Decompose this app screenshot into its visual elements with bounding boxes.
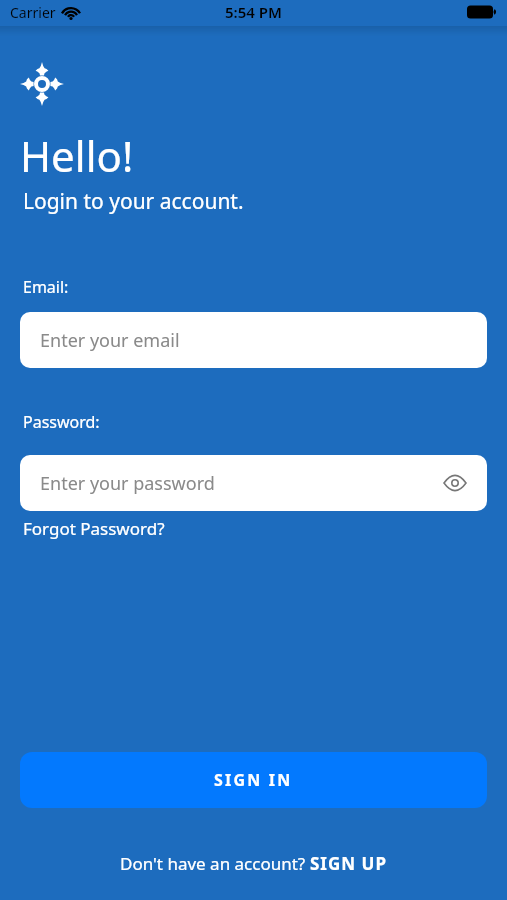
button[interactable]: Forgot Password? [23,517,165,540]
staticText: Password: [23,411,100,433]
staticText: Hello! [20,127,134,184]
staticText: Carrier [10,3,56,22]
staticText: Enter your password [40,471,215,496]
staticText: SIGN IN [214,769,293,791]
staticText: 5:54 PM [225,2,282,22]
button[interactable]: Enter your password [20,455,487,511]
staticText: Email: [23,276,69,298]
staticText: Login to your account. [23,187,244,216]
staticText: SIGN UP [310,852,387,875]
staticText: Enter your email [40,328,180,353]
button[interactable]: Enter your email [20,312,487,368]
button[interactable]: SIGN IN [20,752,487,808]
button[interactable]: Don't have an account? [20,852,487,875]
staticText: Don't have an account? [120,852,310,875]
